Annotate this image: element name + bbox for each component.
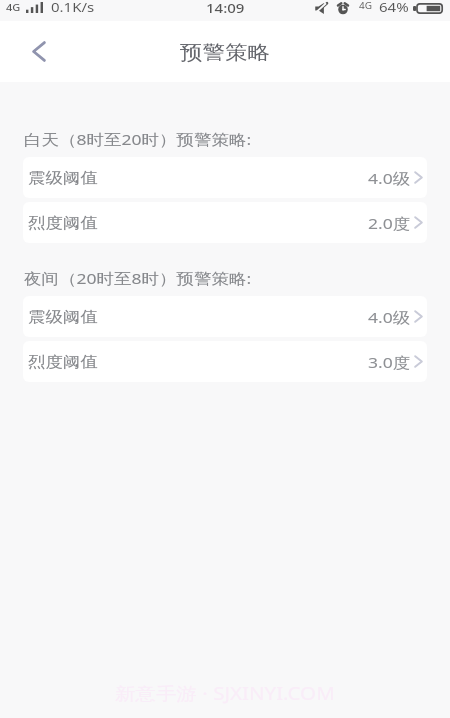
staticText: 4G bbox=[6, 1, 21, 14]
staticText: 2.0度 bbox=[368, 213, 411, 233]
button[interactable]: 震级阈值 bbox=[23, 296, 427, 337]
staticText: 4.0级 bbox=[368, 307, 411, 327]
staticText: 白天（8时至20时）预警策略: bbox=[24, 129, 252, 149]
staticText: 64% bbox=[379, 0, 409, 16]
staticText: 14:09 bbox=[206, 0, 245, 17]
button[interactable]: 烈度阈值 bbox=[23, 202, 427, 243]
staticText: 新意手游 · SJXINYI.COM bbox=[115, 681, 335, 705]
button[interactable]: Back bbox=[0, 21, 64, 82]
staticText: 震级阈值 bbox=[28, 307, 98, 326]
staticText: 4G bbox=[359, 0, 372, 12]
button[interactable]: 震级阈值 bbox=[23, 157, 427, 198]
staticText: 烈度阈值 bbox=[28, 352, 98, 371]
staticText: 4.0级 bbox=[368, 168, 411, 188]
staticText: 烈度阈值 bbox=[28, 213, 98, 232]
staticText: 预警策略 bbox=[180, 40, 270, 64]
staticText: 3.0度 bbox=[368, 352, 411, 372]
staticText: 0.1K/s bbox=[51, 0, 95, 16]
staticText: 震级阈值 bbox=[28, 168, 98, 187]
button[interactable]: 烈度阈值 bbox=[23, 341, 427, 382]
staticText: 夜间（20时至8时）预警策略: bbox=[24, 268, 252, 288]
